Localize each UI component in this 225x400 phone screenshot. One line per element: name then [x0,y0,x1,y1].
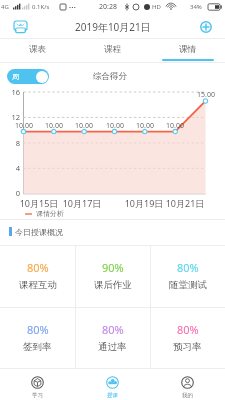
staticText: 我的 [182,392,193,399]
staticText: 课程互动 [19,279,57,291]
staticText: 周 [12,72,19,81]
staticText: 今日授课概况 [15,227,63,237]
button[interactable]: 90% [75,246,150,307]
staticText: 课表 [29,44,46,55]
button[interactable]: 我的 [150,368,225,400]
staticText: 随堂测试 [169,279,207,291]
button[interactable]: 课情 [150,39,225,63]
staticText: 10月17日 [58,197,106,209]
staticText: 学习 [32,392,43,399]
button[interactable]: 学习 [0,368,75,400]
button[interactable]: Add [196,17,215,36]
staticText: 0 [2,188,20,198]
button[interactable]: 80% [150,246,225,307]
staticText: 预习率 [173,341,202,353]
staticText: 4 [2,163,20,173]
staticText: 34% [190,3,202,11]
staticText: 10.00 [162,121,188,131]
staticText: 10月19日 [120,197,168,209]
button[interactable]: 课程 [75,39,150,63]
staticText: 课情分析 [36,209,64,218]
staticText: 12 [2,112,20,122]
button[interactable]: Projection [11,18,30,37]
staticText: 10.00 [11,121,37,131]
staticText: 4G [1,3,9,11]
staticText: 90% [102,260,124,275]
staticText: 20:28 [99,2,117,12]
button[interactable]: 80% [0,308,75,368]
button[interactable]: 80% [75,308,150,368]
staticText: 80% [177,260,199,275]
button[interactable]: 80% [0,246,75,307]
button[interactable]: 课表 [0,39,75,63]
staticText: 2019年10月21日 [75,20,151,34]
staticText: 80% [27,260,49,275]
staticText: 10.00 [132,121,158,131]
staticText: 签到率 [23,341,52,353]
staticText: 16 [2,87,20,97]
staticText: 10月15日 [15,197,63,209]
staticText: 通过率 [98,341,127,353]
staticText: 授课 [107,392,118,399]
staticText: 80% [177,322,199,337]
staticText: 80% [27,322,49,337]
staticText: 10月21日 [161,197,209,209]
staticText: 课后作业 [94,279,132,291]
staticText: 课程 [104,44,121,55]
staticText: 10.00 [102,121,128,131]
staticText: 课情 [179,44,196,55]
staticText: 10.00 [41,121,67,131]
staticText: 8 [2,138,20,148]
staticText: 综合得分 [93,71,127,82]
staticText: HD [152,3,161,11]
button[interactable]: 80% [150,308,225,368]
staticText: 80% [102,322,124,337]
staticText: 15.00 [193,90,219,100]
button[interactable]: 周 [7,69,49,84]
button[interactable]: 授课 [75,368,150,400]
staticText: 10.00 [71,121,97,131]
staticText: 0.1K/s [32,3,50,11]
